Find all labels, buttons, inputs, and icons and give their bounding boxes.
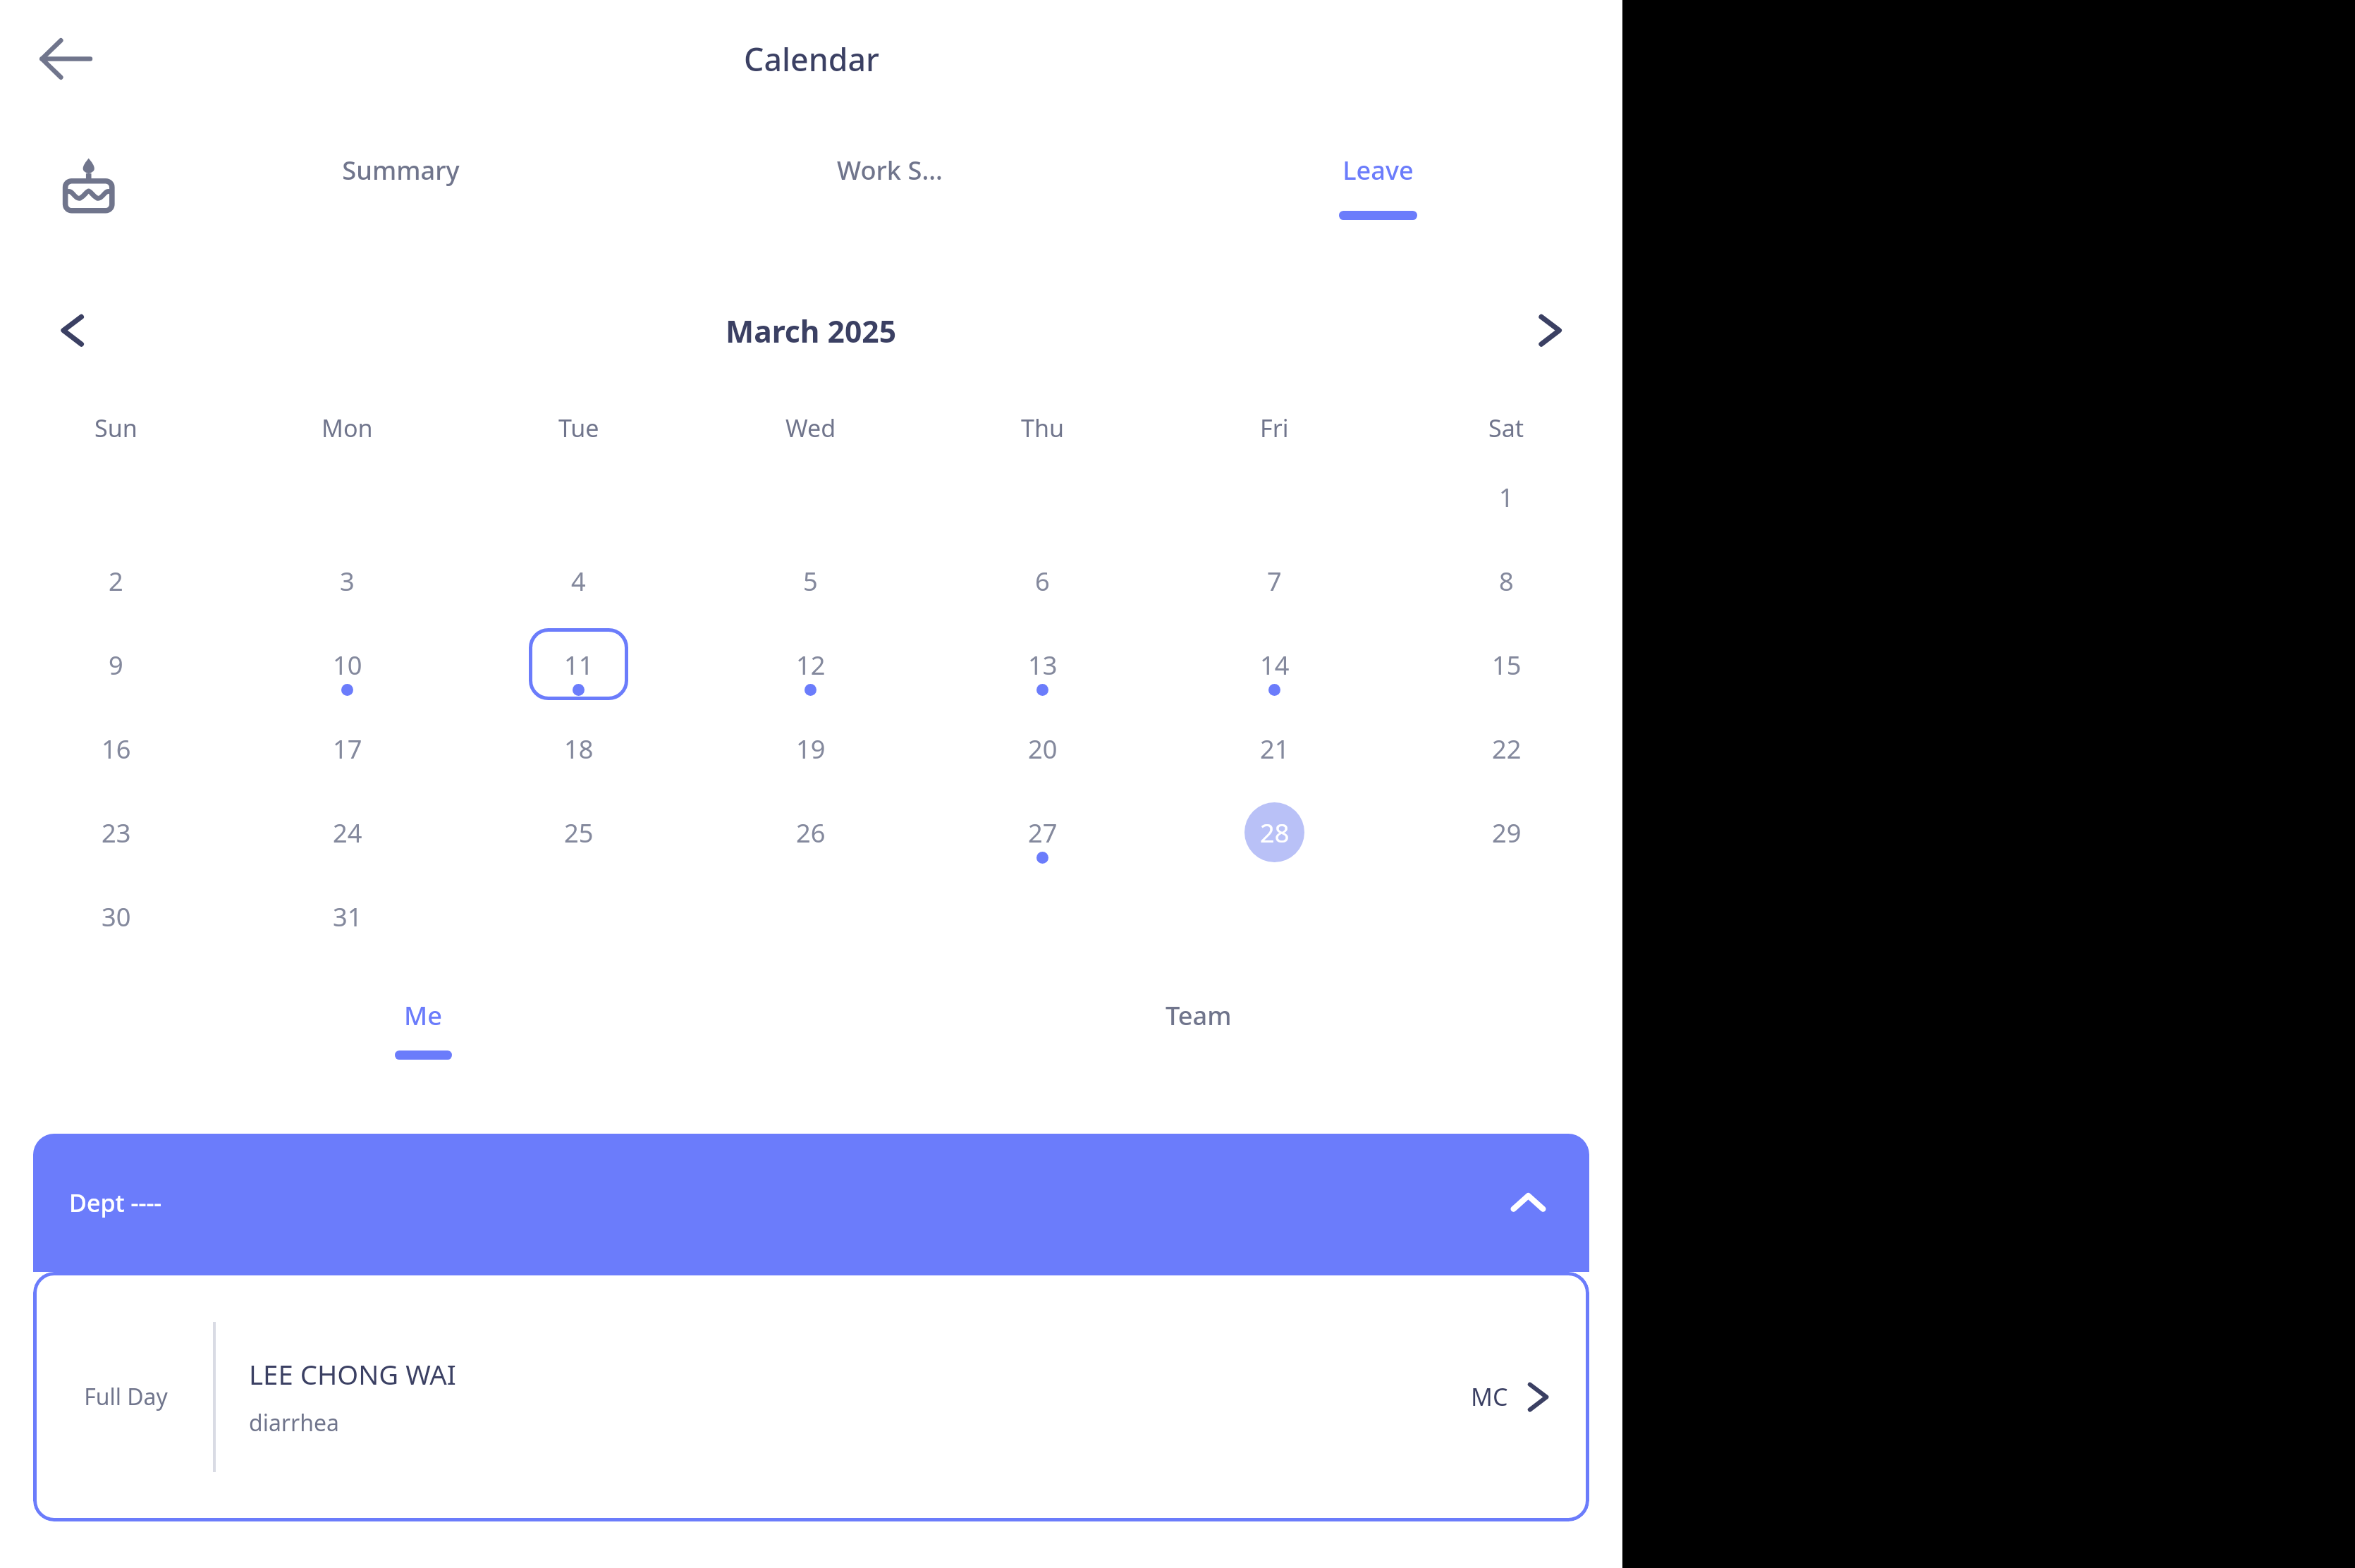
- staticText: diarrhea: [249, 1407, 339, 1438]
- button[interactable]: Me: [36, 981, 811, 1077]
- staticText: 31: [333, 899, 362, 933]
- staticText: Sun: [94, 412, 137, 444]
- staticText: 26: [796, 815, 826, 850]
- staticText: Mon: [322, 412, 373, 444]
- staticText: 5: [803, 563, 818, 598]
- staticText: Wed: [785, 412, 836, 444]
- button[interactable]: 23: [0, 795, 231, 878]
- button[interactable]: 9: [0, 627, 231, 711]
- staticText: 2: [109, 563, 123, 598]
- button[interactable]: 22: [1390, 711, 1622, 795]
- staticText: 22: [1492, 731, 1522, 766]
- staticText: 30: [102, 899, 131, 933]
- staticText: 21: [1260, 731, 1290, 766]
- staticText: Tue: [558, 412, 599, 444]
- button[interactable]: 10: [231, 627, 463, 711]
- staticText: Team: [1166, 998, 1232, 1032]
- button[interactable]: 17: [231, 711, 463, 795]
- staticText: Full Day: [60, 1381, 192, 1412]
- staticText: LEE CHONG WAI: [249, 1356, 456, 1392]
- staticText: MC: [1471, 1380, 1508, 1413]
- staticText: 1: [1499, 479, 1514, 514]
- button[interactable]: Birthdays: [51, 149, 126, 224]
- button[interactable]: Full Day: [33, 1272, 1589, 1521]
- staticText: Me: [404, 998, 443, 1032]
- staticText: 11: [564, 647, 594, 682]
- button[interactable]: 26: [695, 795, 926, 878]
- button[interactable]: 14: [1158, 627, 1390, 711]
- staticText: 17: [333, 731, 362, 766]
- staticText: 28: [1260, 815, 1290, 850]
- button[interactable]: Dept ----: [33, 1134, 1589, 1272]
- button[interactable]: 29: [1390, 795, 1622, 878]
- button[interactable]: 6: [926, 543, 1158, 627]
- button[interactable]: 20: [926, 711, 1158, 795]
- staticText: 8: [1499, 563, 1514, 598]
- button[interactable]: 4: [463, 543, 695, 627]
- staticText: 7: [1267, 563, 1282, 598]
- button[interactable]: Next month: [1508, 288, 1592, 372]
- button[interactable]: 5: [695, 543, 926, 627]
- button[interactable]: 25: [463, 795, 695, 878]
- staticText: 15: [1492, 647, 1522, 682]
- staticText: 18: [564, 731, 594, 766]
- staticText: 24: [333, 815, 362, 850]
- button[interactable]: 30: [0, 878, 231, 962]
- button[interactable]: Team: [811, 981, 1586, 1077]
- staticText: Work S...: [837, 152, 943, 187]
- button[interactable]: 3: [231, 543, 463, 627]
- button[interactable]: Leave: [1134, 117, 1622, 255]
- button[interactable]: 21: [1158, 711, 1390, 795]
- staticText: Summary: [342, 152, 460, 187]
- staticText: 23: [102, 815, 131, 850]
- staticText: Sat: [1488, 412, 1524, 444]
- staticText: March 2025: [726, 310, 897, 351]
- button[interactable]: 31: [231, 878, 463, 962]
- button[interactable]: 11: [463, 627, 695, 711]
- staticText: Thu: [1021, 412, 1065, 444]
- staticText: Leave: [1342, 152, 1414, 187]
- button[interactable]: 1: [1390, 459, 1622, 543]
- button[interactable]: 12: [695, 627, 926, 711]
- staticText: 4: [571, 563, 586, 598]
- button[interactable]: Work S...: [645, 117, 1134, 255]
- other: Collapse: [1503, 1177, 1553, 1228]
- staticText: 6: [1035, 563, 1050, 598]
- button[interactable]: 27: [926, 795, 1158, 878]
- staticText: 20: [1028, 731, 1058, 766]
- button[interactable]: 7: [1158, 543, 1390, 627]
- staticText: Fri: [1260, 412, 1289, 444]
- staticText: 19: [796, 731, 826, 766]
- staticText: 3: [340, 563, 355, 598]
- button[interactable]: 15: [1390, 627, 1622, 711]
- button[interactable]: 2: [0, 543, 231, 627]
- button[interactable]: 8: [1390, 543, 1622, 627]
- staticText: 16: [102, 731, 131, 766]
- button[interactable]: 16: [0, 711, 231, 795]
- staticText: 29: [1492, 815, 1522, 850]
- button[interactable]: 13: [926, 627, 1158, 711]
- staticText: Calendar: [744, 37, 879, 80]
- staticText: 13: [1028, 647, 1058, 682]
- staticText: 27: [1028, 815, 1058, 850]
- button[interactable]: 19: [695, 711, 926, 795]
- button[interactable]: 24: [231, 795, 463, 878]
- staticText: 12: [796, 647, 826, 682]
- staticText: 14: [1260, 647, 1290, 682]
- button[interactable]: Back: [18, 12, 111, 105]
- staticText: 10: [333, 647, 362, 682]
- button[interactable]: 28: [1158, 795, 1390, 878]
- button[interactable]: Summary: [157, 117, 645, 255]
- button[interactable]: 18: [463, 711, 695, 795]
- staticText: Dept ----: [69, 1187, 162, 1219]
- staticText: 9: [109, 647, 123, 682]
- staticText: 25: [564, 815, 594, 850]
- button[interactable]: Previous month: [30, 288, 114, 372]
